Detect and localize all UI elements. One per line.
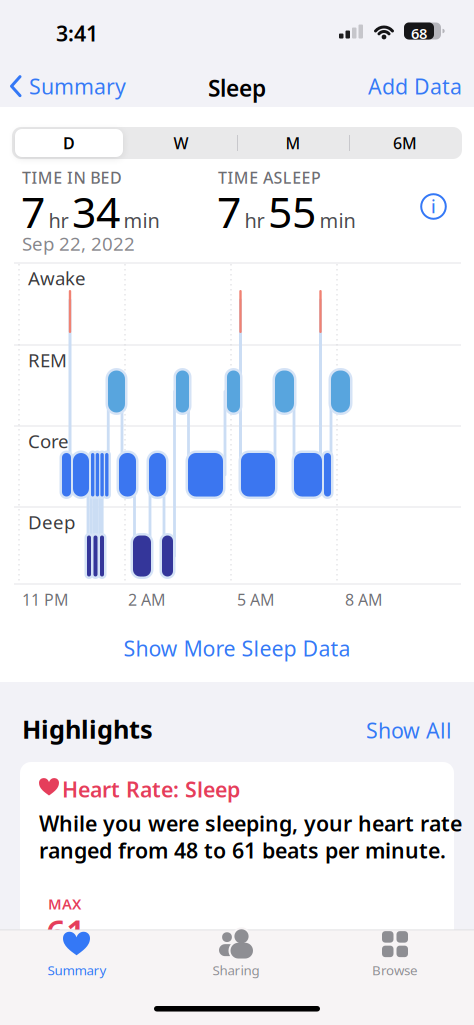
staticText: M xyxy=(285,132,300,154)
button[interactable]: Sharing xyxy=(176,929,296,981)
staticText: 6M xyxy=(393,132,417,154)
staticText: Summary xyxy=(29,72,126,100)
staticText: ranged from 48 to 61 beats per minute. xyxy=(39,836,446,864)
button[interactable]: W xyxy=(125,127,237,159)
staticText: Show All xyxy=(366,716,452,744)
staticText: Show More Sleep Data xyxy=(123,634,350,662)
staticText: 5 AM xyxy=(237,589,275,610)
staticText: min xyxy=(319,207,355,233)
button[interactable]: 6M xyxy=(349,127,461,159)
staticText: Browse xyxy=(372,961,418,979)
staticText: 7 xyxy=(21,183,45,240)
button[interactable]: M xyxy=(237,127,349,159)
staticText: REM xyxy=(28,347,67,372)
staticText: While you were sleeping, your heart rate xyxy=(39,809,462,837)
staticText: Awake xyxy=(28,265,86,290)
staticText: Add Data xyxy=(368,72,462,100)
staticText: Highlights xyxy=(22,712,153,746)
staticText: Sleep xyxy=(208,73,266,103)
button[interactable]: Summary xyxy=(17,929,137,981)
staticText: 34 xyxy=(72,183,120,240)
button[interactable]: Show All xyxy=(366,716,452,744)
staticText: Core xyxy=(28,428,69,453)
staticText: Sharing xyxy=(212,961,259,979)
button[interactable]: Summary xyxy=(9,72,126,100)
staticText: hr xyxy=(48,207,68,233)
button[interactable]: Browse xyxy=(335,929,455,981)
staticText: Summary xyxy=(47,961,106,979)
staticText: 68 xyxy=(411,23,427,43)
staticText: 3:41 xyxy=(56,19,98,47)
staticText: 55 xyxy=(268,183,316,240)
button[interactable]: Heart Rate: Sleep xyxy=(20,762,454,962)
staticText: Deep xyxy=(28,509,75,534)
staticText: 61 xyxy=(46,909,86,955)
staticText: i xyxy=(431,195,436,218)
staticText: 11 PM xyxy=(22,589,69,610)
staticText: MAX xyxy=(48,894,81,913)
staticText: Sep 22, 2022 xyxy=(22,231,135,256)
staticText: 2 AM xyxy=(128,589,166,610)
staticText: D xyxy=(63,132,75,154)
staticText: 7 xyxy=(217,183,241,240)
button[interactable]: About Sleep xyxy=(420,193,447,220)
staticText: min xyxy=(123,207,159,233)
button[interactable]: D xyxy=(13,127,125,159)
staticText: TIME IN BED xyxy=(22,167,122,188)
staticText: W xyxy=(173,132,188,154)
staticText: TIME ASLEEP xyxy=(218,167,321,188)
button[interactable]: Add Data xyxy=(368,72,462,100)
button[interactable]: Show More Sleep Data xyxy=(0,634,474,662)
staticText: 8 AM xyxy=(345,589,383,610)
staticText: hr xyxy=(244,207,264,233)
staticText: Heart Rate: Sleep xyxy=(62,775,240,803)
